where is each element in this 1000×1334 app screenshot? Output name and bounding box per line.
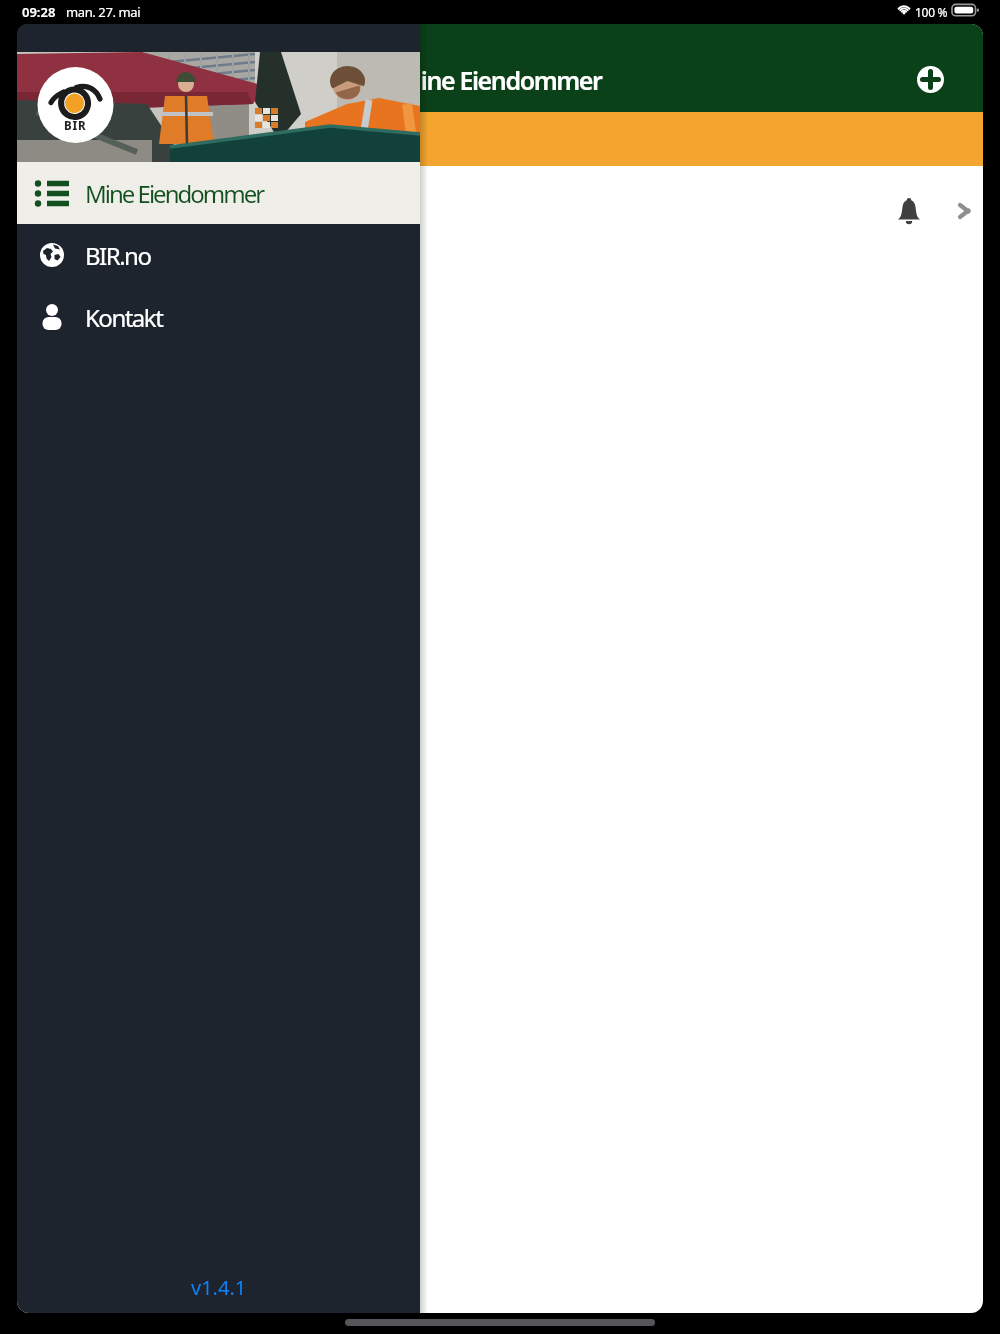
button[interactable]: [917, 66, 944, 93]
staticText: Mine Eiendommer: [399, 63, 602, 97]
staticText: Kontakt: [85, 301, 163, 334]
button[interactable]: Kontakt: [17, 286, 420, 348]
button[interactable]: [17, 166, 983, 248]
button[interactable]: Mine Eiendommer: [17, 162, 420, 224]
staticText: 100 %: [915, 4, 948, 20]
staticText: BIR: [64, 118, 87, 134]
staticText: Mine Eiendommer: [85, 177, 264, 210]
button[interactable]: BIR.no: [17, 224, 420, 286]
staticText: BIR.no: [85, 239, 151, 272]
staticText: 09:28: [22, 3, 56, 21]
staticText: man. 27. mai: [66, 3, 141, 21]
staticText: v1.4.1: [191, 1274, 247, 1301]
button[interactable]: [17, 112, 983, 166]
